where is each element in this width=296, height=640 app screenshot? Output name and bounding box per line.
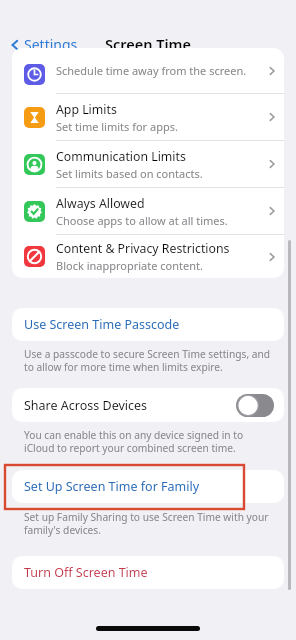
staticText: Content & Privacy Restrictions <box>56 240 230 257</box>
staticText: Schedule time away from the screen. <box>56 63 247 78</box>
button[interactable]: Always Allowed <box>12 188 284 234</box>
button[interactable] <box>236 394 274 417</box>
staticText: Set Up Screen Time for Family <box>24 478 200 495</box>
button[interactable]: Communication Limits <box>12 141 284 187</box>
staticText: Use a passcode to secure Screen Time set… <box>24 347 272 374</box>
staticText: Settings <box>24 35 78 54</box>
button[interactable]: Schedule time away from the screen. <box>12 48 284 93</box>
staticText: Turn Off Screen Time <box>24 564 148 581</box>
staticText: App Limits <box>56 101 117 118</box>
staticText: Set time limits for apps. <box>56 119 178 134</box>
staticText: Set limits based on contacts. <box>56 166 203 181</box>
staticText: Screen Time <box>105 34 191 54</box>
button[interactable]: Content & Privacy Restrictions <box>12 235 284 278</box>
staticText: Share Across Devices <box>24 397 148 414</box>
staticText: Communication Limits <box>56 148 186 165</box>
staticText: Choose apps to allow at all times. <box>56 213 228 228</box>
staticText: Block inappropriate content. <box>56 258 203 273</box>
button[interactable]: Share Across Devices <box>12 388 284 422</box>
staticText: Always Allowed <box>56 195 145 212</box>
staticText: Use Screen Time Passcode <box>24 316 180 333</box>
button[interactable]: Turn Off Screen Time <box>12 556 284 589</box>
staticText: Set up Family Sharing to use Screen Time… <box>24 510 272 537</box>
staticText: You can enable this on any device signed… <box>24 428 272 455</box>
button[interactable]: Use Screen Time Passcode <box>12 308 284 341</box>
button[interactable]: App Limits <box>12 94 284 140</box>
button[interactable]: Back <box>8 35 78 54</box>
button[interactable]: Set Up Screen Time for Family <box>12 470 284 503</box>
other: Back <box>8 38 22 52</box>
